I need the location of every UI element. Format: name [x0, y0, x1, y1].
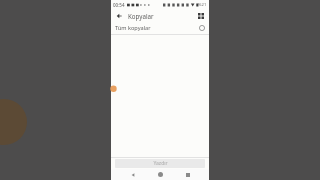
button[interactable]: Geri [114, 11, 124, 21]
button[interactable]: Görünüm [195, 10, 206, 21]
button[interactable]: Yazdır [115, 159, 205, 168]
staticText: Yazdır [153, 160, 168, 167]
staticText: Tüm kopyalar [115, 24, 151, 32]
button[interactable]: Ana ekran [155, 169, 166, 180]
button[interactable]: Geri [127, 169, 138, 180]
button[interactable]: Tüm kopyalar [111, 22, 209, 34]
staticText: 00:54 [113, 2, 125, 8]
button[interactable]: Son uygulamalar [182, 169, 193, 180]
staticText: Kopyalar [128, 12, 154, 20]
staticText: %21 [198, 2, 207, 8]
